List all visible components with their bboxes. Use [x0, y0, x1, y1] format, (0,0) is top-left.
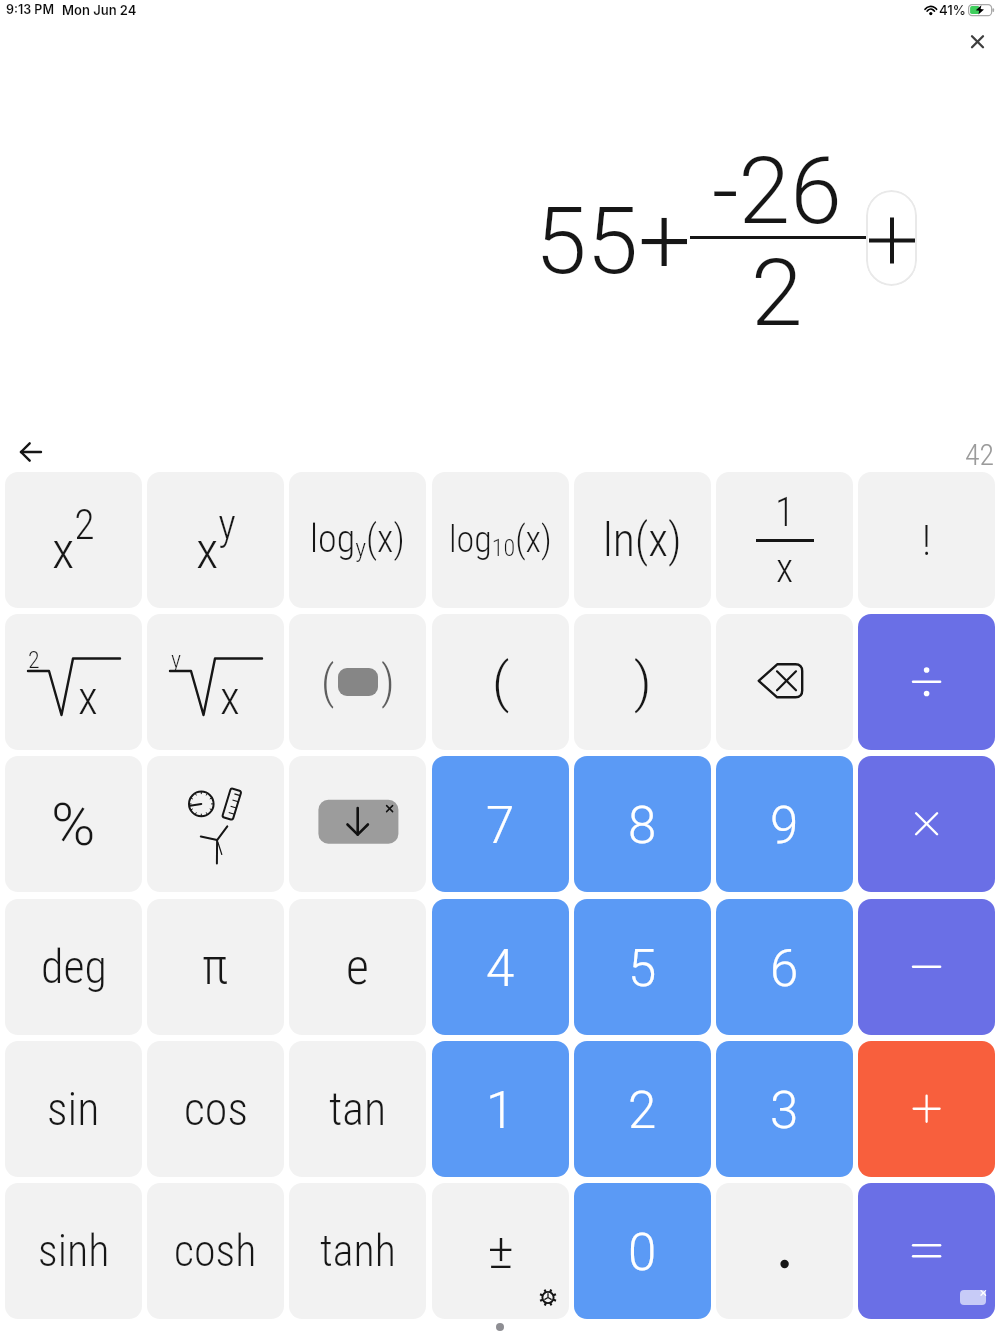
- staticText: sinh: [38, 1225, 110, 1277]
- button[interactable]: [16, 438, 46, 466]
- staticText: logy(x): [310, 517, 405, 563]
- button[interactable]: 5: [574, 899, 711, 1035]
- staticText: y: [171, 646, 182, 672]
- button[interactable]: tanh: [289, 1183, 426, 1319]
- button[interactable]: 6: [716, 899, 853, 1035]
- button[interactable]: 9: [716, 756, 853, 892]
- staticText: 1: [486, 1081, 515, 1141]
- button[interactable]: !: [858, 472, 995, 608]
- staticText: tanh: [320, 1225, 396, 1277]
- staticText: 2: [751, 239, 803, 348]
- staticText: deg: [41, 940, 107, 994]
- button[interactable]: [147, 756, 284, 892]
- button[interactable]: [716, 1183, 853, 1319]
- button[interactable]: y: [147, 614, 284, 750]
- staticText: 6: [770, 939, 799, 999]
- staticText: 7: [486, 796, 515, 856]
- button[interactable]: [858, 899, 995, 1035]
- button[interactable]: cosh: [147, 1183, 284, 1319]
- button[interactable]: [966, 30, 989, 53]
- staticText: %: [51, 789, 96, 859]
- button[interactable]: 2: [574, 1041, 711, 1177]
- button[interactable]: 4: [432, 899, 569, 1035]
- staticText: 9:13 PM: [6, 2, 54, 17]
- staticText: π: [202, 938, 229, 997]
- button[interactable]: 8: [574, 756, 711, 892]
- staticText: log10(x): [449, 519, 552, 562]
- button[interactable]: (: [289, 614, 426, 750]
- staticText: 9: [770, 796, 799, 856]
- staticText: xy: [196, 500, 236, 581]
- staticText: 4: [486, 939, 515, 999]
- staticText: !: [922, 516, 932, 565]
- button[interactable]: [858, 614, 995, 750]
- button[interactable]: [858, 1041, 995, 1177]
- button[interactable]: [858, 756, 995, 892]
- staticText: 1: [775, 489, 795, 536]
- staticText: x: [776, 545, 794, 592]
- button[interactable]: 1: [432, 1041, 569, 1177]
- button[interactable]: cos: [147, 1041, 284, 1177]
- staticText: Mon Jun 24: [62, 2, 137, 18]
- button[interactable]: 3: [716, 1041, 853, 1177]
- button[interactable]: π: [147, 899, 284, 1035]
- staticText: 5: [628, 939, 657, 999]
- button[interactable]: [716, 614, 853, 750]
- staticText: 55+: [535, 187, 691, 296]
- button[interactable]: 2: [5, 614, 142, 750]
- button[interactable]: ±: [432, 1183, 569, 1319]
- button[interactable]: 0: [574, 1183, 711, 1319]
- staticText: 3: [770, 1081, 799, 1141]
- button[interactable]: sinh: [5, 1183, 142, 1319]
- button[interactable]: %: [5, 756, 142, 892]
- button[interactable]: 1: [716, 472, 853, 608]
- staticText: sin: [47, 1082, 100, 1136]
- staticText: ±: [488, 1223, 514, 1279]
- staticText: 41%: [939, 2, 966, 18]
- button[interactable]: (: [432, 614, 569, 750]
- staticText: ): [634, 651, 652, 714]
- button[interactable]: tan: [289, 1041, 426, 1177]
- staticText: x: [78, 671, 98, 725]
- button[interactable]: x2: [5, 472, 142, 608]
- staticText: x: [220, 671, 240, 725]
- button[interactable]: 7: [432, 756, 569, 892]
- button[interactable]: ln(x): [574, 472, 711, 608]
- button[interactable]: xy: [147, 472, 284, 608]
- staticText: 42: [965, 437, 995, 467]
- button[interactable]: ): [574, 614, 711, 750]
- button[interactable]: [858, 1183, 995, 1319]
- button[interactable]: deg: [5, 899, 142, 1035]
- staticText: cos: [184, 1082, 248, 1136]
- staticText: (: [321, 655, 335, 709]
- staticText: tan: [329, 1082, 387, 1136]
- button[interactable]: log10(x): [432, 472, 569, 608]
- staticText: e: [346, 938, 369, 997]
- staticText: 2: [628, 1081, 657, 1141]
- button[interactable]: logy(x): [289, 472, 426, 608]
- button[interactable]: [289, 756, 426, 892]
- button[interactable]: [866, 190, 917, 286]
- button[interactable]: sin: [5, 1041, 142, 1177]
- button[interactable]: e: [289, 899, 426, 1035]
- staticText: 2: [28, 646, 40, 672]
- staticText: x2: [52, 500, 95, 581]
- staticText: -26: [712, 137, 842, 246]
- staticText: 0: [628, 1223, 657, 1283]
- staticText: ln(x): [603, 513, 682, 567]
- staticText: ): [381, 655, 395, 709]
- staticText: 8: [628, 796, 657, 856]
- staticText: cosh: [174, 1225, 257, 1277]
- staticText: (: [492, 651, 510, 714]
